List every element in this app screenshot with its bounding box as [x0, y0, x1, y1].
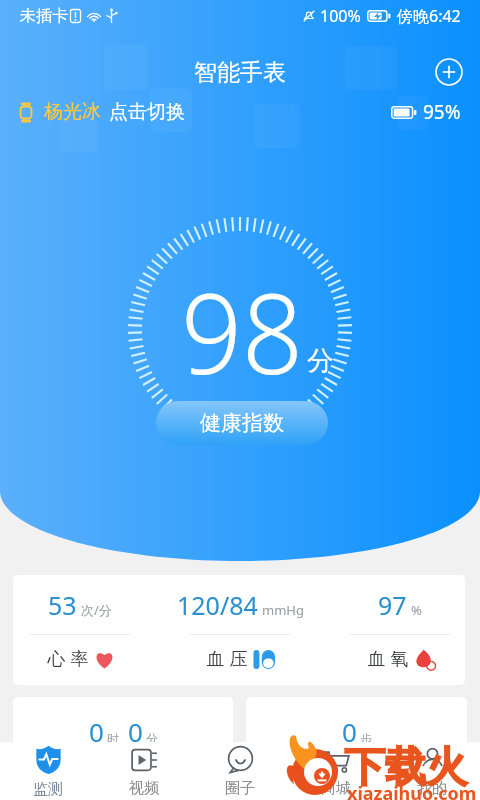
- staticText: 圈子: [225, 779, 255, 798]
- staticText: 53: [48, 588, 77, 622]
- staticText: 分: [307, 344, 334, 378]
- staticText: 血压: [204, 648, 250, 671]
- button[interactable]: 120/84: [160, 575, 320, 671]
- button[interactable]: 我的: [384, 744, 480, 799]
- staticText: 血氧: [365, 648, 411, 671]
- staticText: 120/84: [177, 588, 258, 622]
- staticText: 0: [89, 714, 104, 749]
- button[interactable]: Add device: [429, 52, 469, 92]
- staticText: 商城: [321, 779, 351, 798]
- staticText: %: [411, 601, 422, 619]
- staticText: 0: [128, 714, 143, 749]
- button[interactable]: 视频: [96, 744, 192, 799]
- button[interactable]: 圈子: [192, 744, 288, 799]
- button[interactable]: 商城: [288, 744, 384, 799]
- staticText: 点击切换: [109, 100, 185, 124]
- button[interactable]: 0: [13, 697, 233, 777]
- staticText: 0: [342, 714, 357, 749]
- staticText: 97: [378, 588, 407, 622]
- staticText: 未插卡: [20, 6, 68, 26]
- staticText: 监测: [33, 780, 63, 799]
- staticText: 傍晚6:42: [397, 5, 461, 27]
- staticText: 下载火: [344, 742, 467, 794]
- staticText: 分: [146, 731, 158, 746]
- button[interactable]: 97: [320, 575, 480, 671]
- button[interactable]: 53: [0, 575, 160, 671]
- button[interactable]: 杨光冰: [18, 100, 185, 124]
- staticText: 次/分: [81, 601, 112, 619]
- staticText: 心率: [45, 648, 91, 671]
- staticText: mmHg: [262, 601, 304, 619]
- staticText: 100%: [320, 5, 361, 27]
- staticText: 98: [181, 256, 303, 406]
- staticText: 我的: [417, 779, 447, 798]
- staticText: 健康指数: [200, 410, 284, 436]
- button[interactable]: 健康指数: [156, 401, 328, 445]
- staticText: 时: [107, 731, 119, 746]
- staticText: 95%: [423, 99, 461, 125]
- staticText: xiazaihuo.com: [347, 781, 477, 800]
- staticText: 智能手表: [194, 58, 286, 87]
- button[interactable]: 监测: [0, 742, 96, 800]
- staticText: 杨光冰: [44, 100, 101, 124]
- button[interactable]: 0: [246, 697, 467, 777]
- staticText: 步: [360, 731, 372, 746]
- staticText: 视频: [129, 779, 159, 798]
